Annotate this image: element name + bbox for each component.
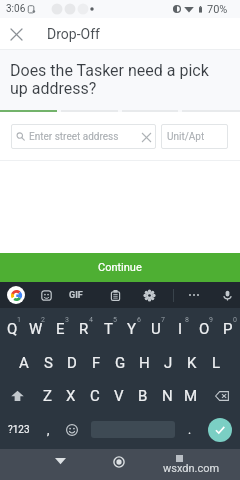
staticText: T bbox=[104, 320, 113, 338]
button[interactable]: Done bbox=[208, 418, 232, 442]
staticText: J bbox=[164, 354, 173, 372]
staticText: Enter street address bbox=[29, 131, 119, 143]
button[interactable]: B bbox=[131, 379, 155, 412]
button[interactable]: Emoji bbox=[60, 413, 84, 446]
button[interactable]: Z bbox=[35, 379, 59, 412]
staticText: 8 bbox=[185, 316, 189, 324]
staticText: 9 bbox=[209, 316, 213, 324]
button[interactable]: O bbox=[192, 312, 216, 345]
button[interactable]: J bbox=[156, 346, 180, 379]
button[interactable]: C bbox=[83, 379, 107, 412]
button[interactable]: L bbox=[204, 346, 228, 379]
staticText: Y bbox=[127, 320, 137, 338]
button[interactable]: Clear bbox=[140, 131, 152, 143]
button[interactable]: , bbox=[38, 413, 58, 446]
button[interactable]: P bbox=[216, 312, 240, 345]
button[interactable]: X bbox=[59, 379, 83, 412]
staticText: M bbox=[184, 387, 198, 405]
staticText: H bbox=[139, 354, 150, 372]
button[interactable]: Continue bbox=[0, 253, 240, 282]
staticText: 7 bbox=[161, 316, 165, 324]
staticText: Unit/Apt bbox=[167, 131, 205, 143]
button[interactable]: GIF bbox=[62, 282, 90, 308]
button[interactable]: D bbox=[60, 346, 84, 379]
button[interactable]: . bbox=[181, 413, 199, 446]
button[interactable]: H bbox=[132, 346, 156, 379]
button[interactable]: W bbox=[24, 312, 48, 345]
staticText: 3 bbox=[65, 316, 69, 324]
button[interactable]: I bbox=[168, 312, 192, 345]
staticText: S bbox=[44, 354, 53, 372]
button[interactable]: ?123 bbox=[4, 413, 34, 446]
staticText: Does the Tasker need a pick up address? bbox=[10, 61, 209, 98]
staticText: X bbox=[66, 387, 76, 405]
staticText: O bbox=[199, 320, 210, 338]
staticText: C bbox=[90, 387, 100, 405]
button[interactable]: F bbox=[84, 346, 108, 379]
staticText: 1 bbox=[17, 316, 21, 324]
button[interactable]: G bbox=[108, 346, 132, 379]
staticText: 6 bbox=[137, 316, 141, 324]
staticText: ?123 bbox=[8, 424, 30, 436]
staticText: Continue bbox=[98, 261, 142, 274]
button[interactable]: Voice input bbox=[212, 282, 240, 308]
staticText: I bbox=[178, 320, 183, 338]
staticText: A bbox=[19, 354, 29, 372]
staticText: V bbox=[114, 387, 124, 405]
button[interactable]: Enter street address bbox=[11, 124, 156, 149]
staticText: U bbox=[151, 320, 161, 338]
button[interactable]: Shift bbox=[0, 379, 35, 412]
button[interactable]: More options bbox=[179, 282, 209, 308]
button[interactable]: Recent apps bbox=[163, 443, 195, 474]
staticText: B bbox=[138, 387, 148, 405]
button[interactable]: Q bbox=[0, 312, 24, 345]
button[interactable]: Home bbox=[103, 446, 135, 477]
button[interactable]: Settings bbox=[135, 282, 163, 308]
staticText: R bbox=[79, 320, 89, 338]
staticText: E bbox=[56, 320, 65, 338]
button[interactable]: Unit/Apt bbox=[161, 124, 228, 149]
staticText: G bbox=[115, 354, 126, 372]
staticText: , bbox=[47, 423, 50, 437]
staticText: F bbox=[92, 354, 101, 372]
staticText: . bbox=[188, 423, 192, 437]
button[interactable]: Stickers bbox=[32, 282, 60, 308]
button[interactable]: Backspace bbox=[203, 379, 240, 412]
button[interactable]: R bbox=[72, 312, 96, 345]
button[interactable]: S bbox=[36, 346, 60, 379]
staticText: P bbox=[223, 320, 233, 338]
staticText: 0 bbox=[233, 316, 237, 324]
button[interactable]: E bbox=[48, 312, 72, 345]
staticText: 70% bbox=[207, 3, 228, 16]
button[interactable]: Close bbox=[4, 22, 28, 46]
staticText: Drop-Off bbox=[47, 26, 100, 42]
staticText: Q bbox=[7, 320, 18, 338]
button[interactable]: Y bbox=[120, 312, 144, 345]
staticText: D bbox=[67, 354, 77, 372]
staticText: 2 bbox=[41, 316, 45, 324]
staticText: Z bbox=[43, 387, 52, 405]
button[interactable]: T bbox=[96, 312, 120, 345]
button[interactable]: V bbox=[107, 379, 131, 412]
button[interactable]: M bbox=[179, 379, 203, 412]
button[interactable]: N bbox=[155, 379, 179, 412]
staticText: K bbox=[187, 354, 197, 372]
staticText: wsxdn.com bbox=[163, 462, 220, 475]
staticText: 3:06 bbox=[6, 3, 26, 15]
button[interactable]: A bbox=[12, 346, 36, 379]
button[interactable]: Clipboard bbox=[101, 282, 129, 308]
button[interactable]: U bbox=[144, 312, 168, 345]
staticText: W bbox=[29, 320, 43, 338]
staticText: N bbox=[162, 387, 173, 405]
staticText: 5 bbox=[113, 316, 117, 324]
staticText: GIF bbox=[69, 290, 83, 301]
button[interactable]: Back bbox=[44, 445, 76, 476]
button[interactable]: K bbox=[180, 346, 204, 379]
button[interactable]: Google bbox=[6, 285, 26, 305]
staticText: L bbox=[212, 354, 221, 372]
staticText: 4 bbox=[89, 316, 93, 324]
